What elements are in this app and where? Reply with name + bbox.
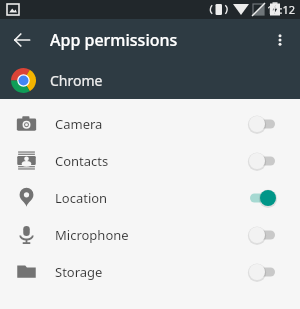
staticText: Microphone [55, 226, 129, 244]
button[interactable]: Contacts [0, 142, 300, 179]
button[interactable]: Off [248, 112, 286, 136]
button[interactable]: More options [264, 24, 296, 56]
staticText: Chrome [50, 71, 103, 90]
button[interactable]: Microphone [0, 216, 300, 253]
staticText: Contacts [55, 152, 109, 170]
button[interactable]: Camera [0, 105, 300, 142]
button[interactable]: Off [248, 260, 286, 284]
staticText: App permissions [50, 29, 178, 51]
button[interactable]: Storage [0, 253, 300, 290]
staticText: Location [55, 189, 108, 207]
button[interactable]: Location [0, 179, 300, 216]
staticText: Storage [55, 263, 103, 281]
button[interactable]: Off [248, 223, 286, 247]
button[interactable]: Back [6, 24, 38, 56]
button[interactable]: Chrome [0, 61, 300, 99]
staticText: Camera [55, 115, 103, 133]
button[interactable]: Off [248, 149, 286, 173]
staticText: 10:12 [267, 2, 296, 17]
button[interactable]: On [248, 186, 286, 210]
